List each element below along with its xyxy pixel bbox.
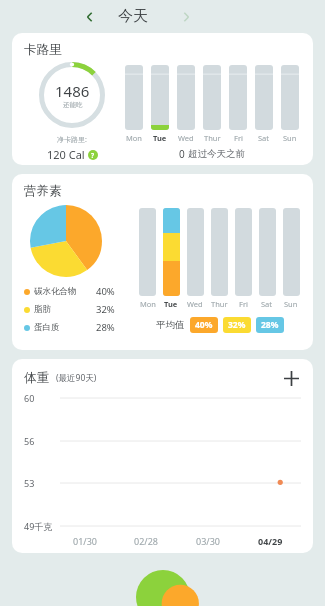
staticText: 营养素 <box>24 183 62 199</box>
staticText: Wed <box>178 133 194 143</box>
staticText: 40% <box>195 319 213 331</box>
staticText: Thur <box>204 133 221 143</box>
button[interactable]: Add weight <box>281 368 301 388</box>
staticText: 28% <box>261 319 279 331</box>
staticText: 平均值 <box>156 319 185 331</box>
staticText: Mon <box>140 299 156 309</box>
staticText: Thur <box>211 299 228 309</box>
staticText: 净卡路里: <box>57 135 87 145</box>
staticText: 32% <box>96 303 115 316</box>
staticText: Mon <box>126 133 142 143</box>
staticText: 还能吃 <box>63 101 83 109</box>
button[interactable]: Previous day <box>78 5 102 29</box>
staticText: 蛋白质 <box>34 322 60 333</box>
staticText: 今天 <box>118 7 148 26</box>
button[interactable]: Add entry <box>136 570 190 606</box>
staticText: Tue <box>164 299 178 309</box>
staticText: 28% <box>96 321 115 334</box>
staticText: 体重 <box>24 370 49 386</box>
staticText: Fri <box>239 299 248 309</box>
staticText: 超过今天之前 <box>188 148 245 160</box>
staticText: Fri <box>234 133 243 143</box>
staticText: 0 <box>179 147 188 161</box>
staticText: 脂肪 <box>34 304 51 315</box>
staticText: 32% <box>228 319 246 331</box>
staticText: 01/30 <box>73 535 97 547</box>
staticText: Sun <box>283 133 297 143</box>
button[interactable]: Next day <box>174 5 198 29</box>
staticText: 03/30 <box>196 535 220 547</box>
staticText: Sun <box>284 299 298 309</box>
staticText: (最近90天) <box>56 372 97 384</box>
staticText: Sat <box>258 133 270 143</box>
staticText: Wed <box>187 299 203 309</box>
staticText: 02/28 <box>134 535 158 547</box>
staticText: 40% <box>96 285 115 298</box>
staticText: Sat <box>261 299 273 309</box>
staticText: 56 <box>24 435 35 447</box>
staticText: ? <box>91 151 95 160</box>
staticText: 卡路里 <box>24 42 62 58</box>
staticText: Tue <box>153 133 167 143</box>
button[interactable]: 体重 <box>12 359 313 553</box>
staticText: 53 <box>24 477 35 489</box>
staticText: 60 <box>24 392 35 404</box>
staticText: 碳水化合物 <box>34 286 77 297</box>
button[interactable]: 卡路里 <box>12 33 313 165</box>
staticText: 49千克 <box>24 520 53 532</box>
staticText: 1486 <box>55 81 90 101</box>
button[interactable]: 营养素 <box>12 174 313 350</box>
staticText: 04/29 <box>258 535 283 547</box>
staticText: 120 Cal <box>47 147 85 162</box>
